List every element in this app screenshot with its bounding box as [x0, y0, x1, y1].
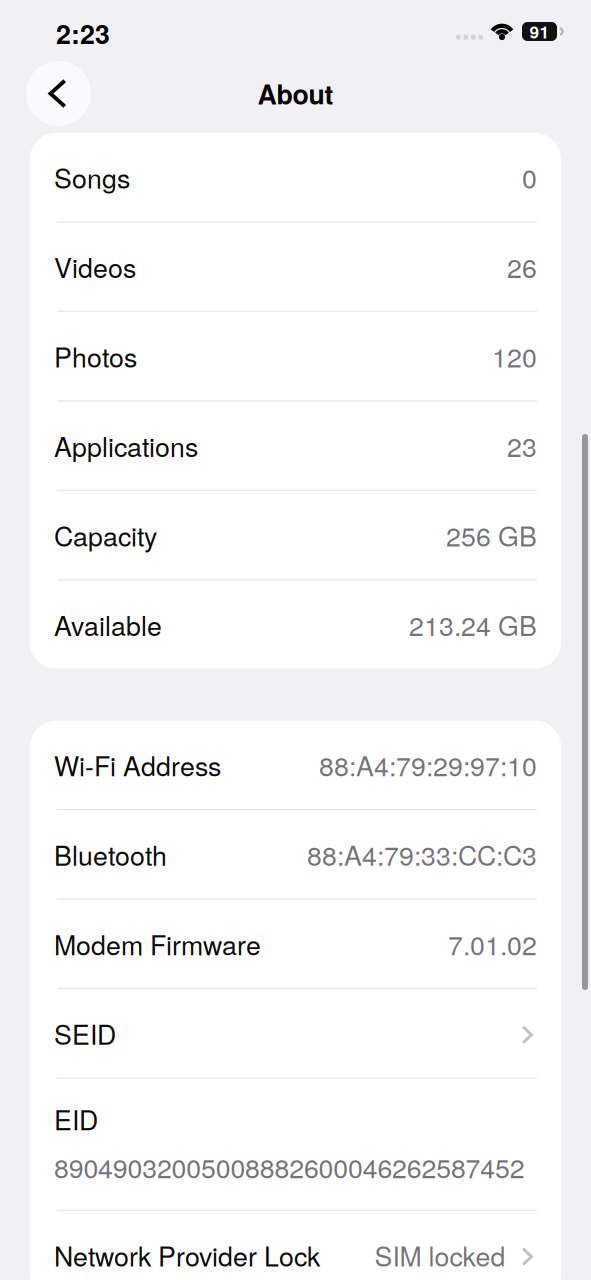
button[interactable]: Bluetooth [30, 810, 561, 898]
staticText: About [257, 74, 333, 113]
button[interactable]: Applications [30, 401, 561, 490]
button[interactable]: EID [30, 1079, 561, 1210]
staticText: Bluetooth [54, 835, 167, 873]
staticText: SEID [54, 1014, 116, 1052]
staticText: 88:A4:79:33:CC:C3 [307, 835, 537, 873]
staticText: Available [54, 605, 162, 644]
button[interactable]: Songs [30, 133, 561, 221]
staticText: 88:A4:79:29:97:10 [319, 746, 537, 784]
staticText: 91 [529, 19, 549, 44]
staticText: 7.01.02 [448, 925, 537, 963]
staticText: Videos [54, 247, 136, 286]
staticText: Modem Firmware [54, 925, 261, 963]
button[interactable]: Videos [30, 222, 561, 311]
staticText: 213.24 GB [409, 605, 537, 644]
staticText: Network Provider Lock [54, 1236, 320, 1274]
button[interactable]: Available [30, 580, 561, 669]
button[interactable]: Network Provider Lock [30, 1211, 561, 1280]
staticText: 23 [507, 426, 537, 465]
staticText: 120 [492, 337, 537, 375]
button[interactable]: Modem Firmware [30, 900, 561, 988]
staticText: Wi-Fi Address [54, 746, 221, 784]
staticText: 2:23 [56, 14, 110, 52]
staticText: SIM locked [374, 1236, 505, 1274]
staticText: Songs [54, 158, 130, 196]
button[interactable]: SEID [30, 989, 561, 1077]
staticText: EID [54, 1100, 98, 1138]
staticText: Capacity [54, 516, 157, 554]
staticText: 0 [522, 158, 537, 196]
button[interactable]: Capacity [30, 491, 561, 579]
staticText: 89049032005008882600046262587452 [54, 1148, 525, 1186]
button[interactable]: Photos [30, 312, 561, 400]
staticText: Photos [54, 337, 137, 375]
staticText: 256 GB [446, 516, 537, 554]
staticText: 26 [507, 247, 537, 286]
button[interactable]: Back [26, 61, 91, 126]
button[interactable]: Wi-Fi Address [30, 721, 561, 809]
staticText: Applications [54, 426, 198, 465]
